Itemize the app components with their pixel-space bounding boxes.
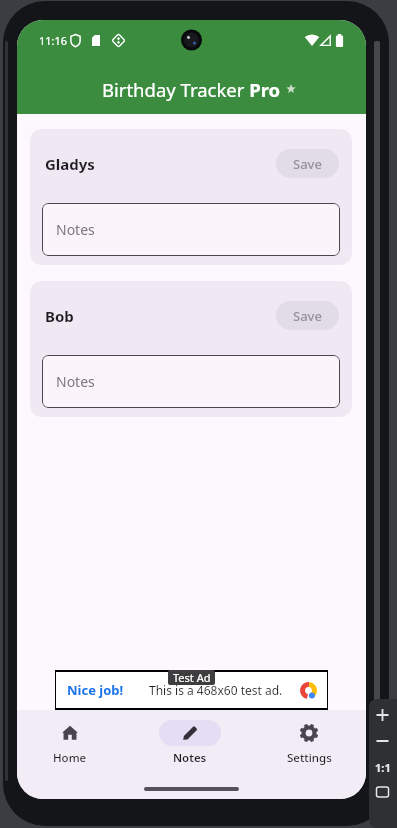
staticText: Bob: [45, 306, 74, 326]
button[interactable]: Nice job!: [55, 670, 328, 710]
staticText: 11:16: [39, 33, 68, 48]
staticText: Notes: [56, 220, 95, 239]
button[interactable]: Notes: [42, 355, 340, 408]
button[interactable]: Save: [276, 149, 339, 178]
staticText: Save: [293, 307, 322, 325]
staticText: 1:1: [375, 760, 391, 775]
button[interactable]: Save: [276, 301, 339, 330]
button[interactable]: Notes: [150, 712, 230, 772]
button[interactable]: Settings: [269, 712, 349, 772]
staticText: Save: [293, 155, 322, 173]
staticText: Notes: [56, 372, 95, 391]
staticText: This is a 468x60 test ad.: [149, 682, 283, 698]
staticText: Notes: [173, 750, 207, 766]
staticText: Settings: [287, 750, 332, 766]
staticText: Gladys: [45, 154, 95, 174]
staticText: Test Ad: [173, 670, 211, 685]
staticText: Nice job!: [67, 681, 124, 699]
button[interactable]: Home: [30, 712, 110, 772]
button[interactable]: Notes: [42, 203, 340, 256]
staticText: Birthday Tracker Pro: [102, 77, 281, 102]
staticText: Home: [53, 750, 87, 766]
